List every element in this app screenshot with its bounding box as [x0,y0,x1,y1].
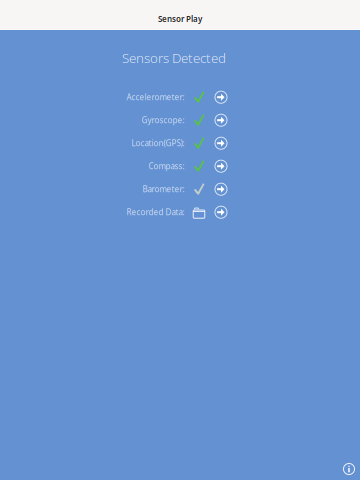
button[interactable]: Location(GPS): [126,132,227,155]
button[interactable]: Barometer: [126,178,227,201]
staticText: Barometer: [142,184,184,194]
button[interactable]: Compass: [126,155,227,178]
staticText: Gyroscope: [141,115,184,125]
button[interactable]: About [342,462,360,480]
button[interactable]: Gyroscope: [126,109,227,132]
staticText: Compass: [148,161,184,171]
staticText: Location(GPS): [131,138,184,148]
staticText: Sensors Detected [122,49,226,67]
button[interactable]: Accelerometer: [126,86,227,109]
button[interactable]: Recorded Data: [126,201,227,224]
staticText: Accelerometer: [126,92,184,102]
staticText: Recorded Data: [126,207,184,217]
staticText: Sensor Play [158,14,202,24]
